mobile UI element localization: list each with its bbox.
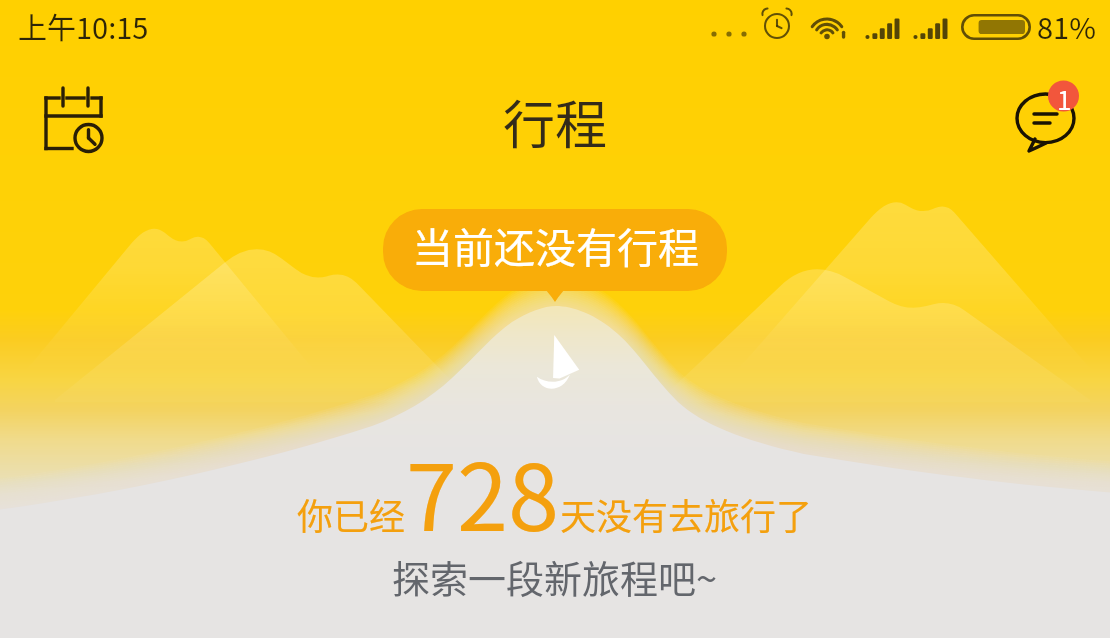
staticText: 当前还没有行程 bbox=[412, 215, 699, 274]
staticText: 1 bbox=[1057, 80, 1072, 118]
staticText: 天没有去旅行了 bbox=[560, 488, 813, 540]
button[interactable]: Schedule bbox=[26, 82, 121, 166]
staticText: 上午10:15 bbox=[18, 5, 149, 47]
staticText: 探索一段新旅程吧~ bbox=[392, 549, 718, 604]
staticText: 728 bbox=[406, 424, 560, 557]
staticText: 81% bbox=[1037, 5, 1096, 47]
staticText: 行程 bbox=[503, 84, 608, 159]
button[interactable]: Messages bbox=[1012, 75, 1098, 159]
staticText: 你已经 bbox=[297, 488, 406, 540]
button[interactable]: 当前还没有行程 bbox=[383, 209, 727, 304]
